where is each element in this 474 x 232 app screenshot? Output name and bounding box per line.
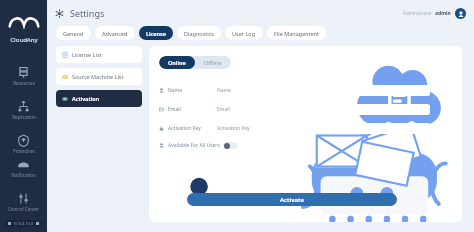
button[interactable]: File Management	[267, 26, 326, 40]
button[interactable]: License List	[56, 46, 142, 63]
button[interactable]: Advanced	[95, 26, 135, 40]
button[interactable]: License	[139, 26, 173, 40]
staticText: File Management	[274, 30, 319, 37]
staticText: Administrator	[403, 10, 433, 16]
button[interactable]: Control Center	[0, 192, 47, 212]
button[interactable]: User Log	[225, 26, 263, 40]
staticText: Settings	[70, 7, 105, 19]
button[interactable]: User account	[455, 8, 466, 19]
button[interactable]: Replication	[0, 100, 47, 120]
button[interactable]: Resources	[0, 66, 47, 86]
staticText: Activate	[280, 196, 304, 204]
button[interactable]: Name	[213, 85, 430, 96]
staticText: Diagnostics	[184, 30, 214, 37]
staticText: admin	[435, 10, 451, 17]
button[interactable]: Online	[159, 56, 195, 69]
staticText: Replication	[12, 114, 36, 120]
staticText: License List	[72, 51, 102, 58]
button[interactable]: Offline	[195, 56, 231, 69]
staticText: Email	[217, 106, 230, 113]
staticText: Offline	[204, 59, 222, 66]
button[interactable]: Available for all users toggle	[223, 142, 237, 149]
staticText: Source Machine List	[72, 73, 124, 80]
staticText: Control Center	[8, 206, 39, 212]
staticText: Resources	[13, 80, 35, 86]
staticText: Advanced	[102, 30, 128, 37]
button[interactable]: Protection	[0, 134, 47, 154]
staticText: Name	[168, 87, 183, 94]
button[interactable]: Notification	[0, 158, 47, 178]
staticText: Name	[217, 87, 232, 94]
button[interactable]: Activation Key	[213, 123, 430, 134]
button[interactable]: General	[56, 26, 91, 40]
button[interactable]: Diagnostics	[177, 26, 221, 40]
button[interactable]: Email	[213, 104, 430, 115]
button[interactable]: Activation	[56, 90, 142, 107]
staticText: Protection	[13, 148, 35, 154]
staticText: Activation Key	[217, 125, 250, 132]
staticText: Online	[168, 59, 186, 66]
staticText: Available For All Users	[168, 142, 220, 149]
staticText: Activation	[72, 95, 100, 102]
staticText: Email	[168, 106, 181, 113]
staticText: CloudAny	[10, 36, 38, 44]
staticText: Notification	[11, 172, 36, 178]
staticText: User Log	[232, 30, 256, 37]
staticText: Activation Key	[168, 125, 201, 132]
staticText: 10.0.4.13.0	[13, 221, 34, 226]
staticText: License	[146, 30, 166, 37]
staticText: General	[63, 30, 84, 37]
button[interactable]: Source Machine List	[56, 68, 142, 85]
button[interactable]: Activate	[187, 193, 397, 206]
